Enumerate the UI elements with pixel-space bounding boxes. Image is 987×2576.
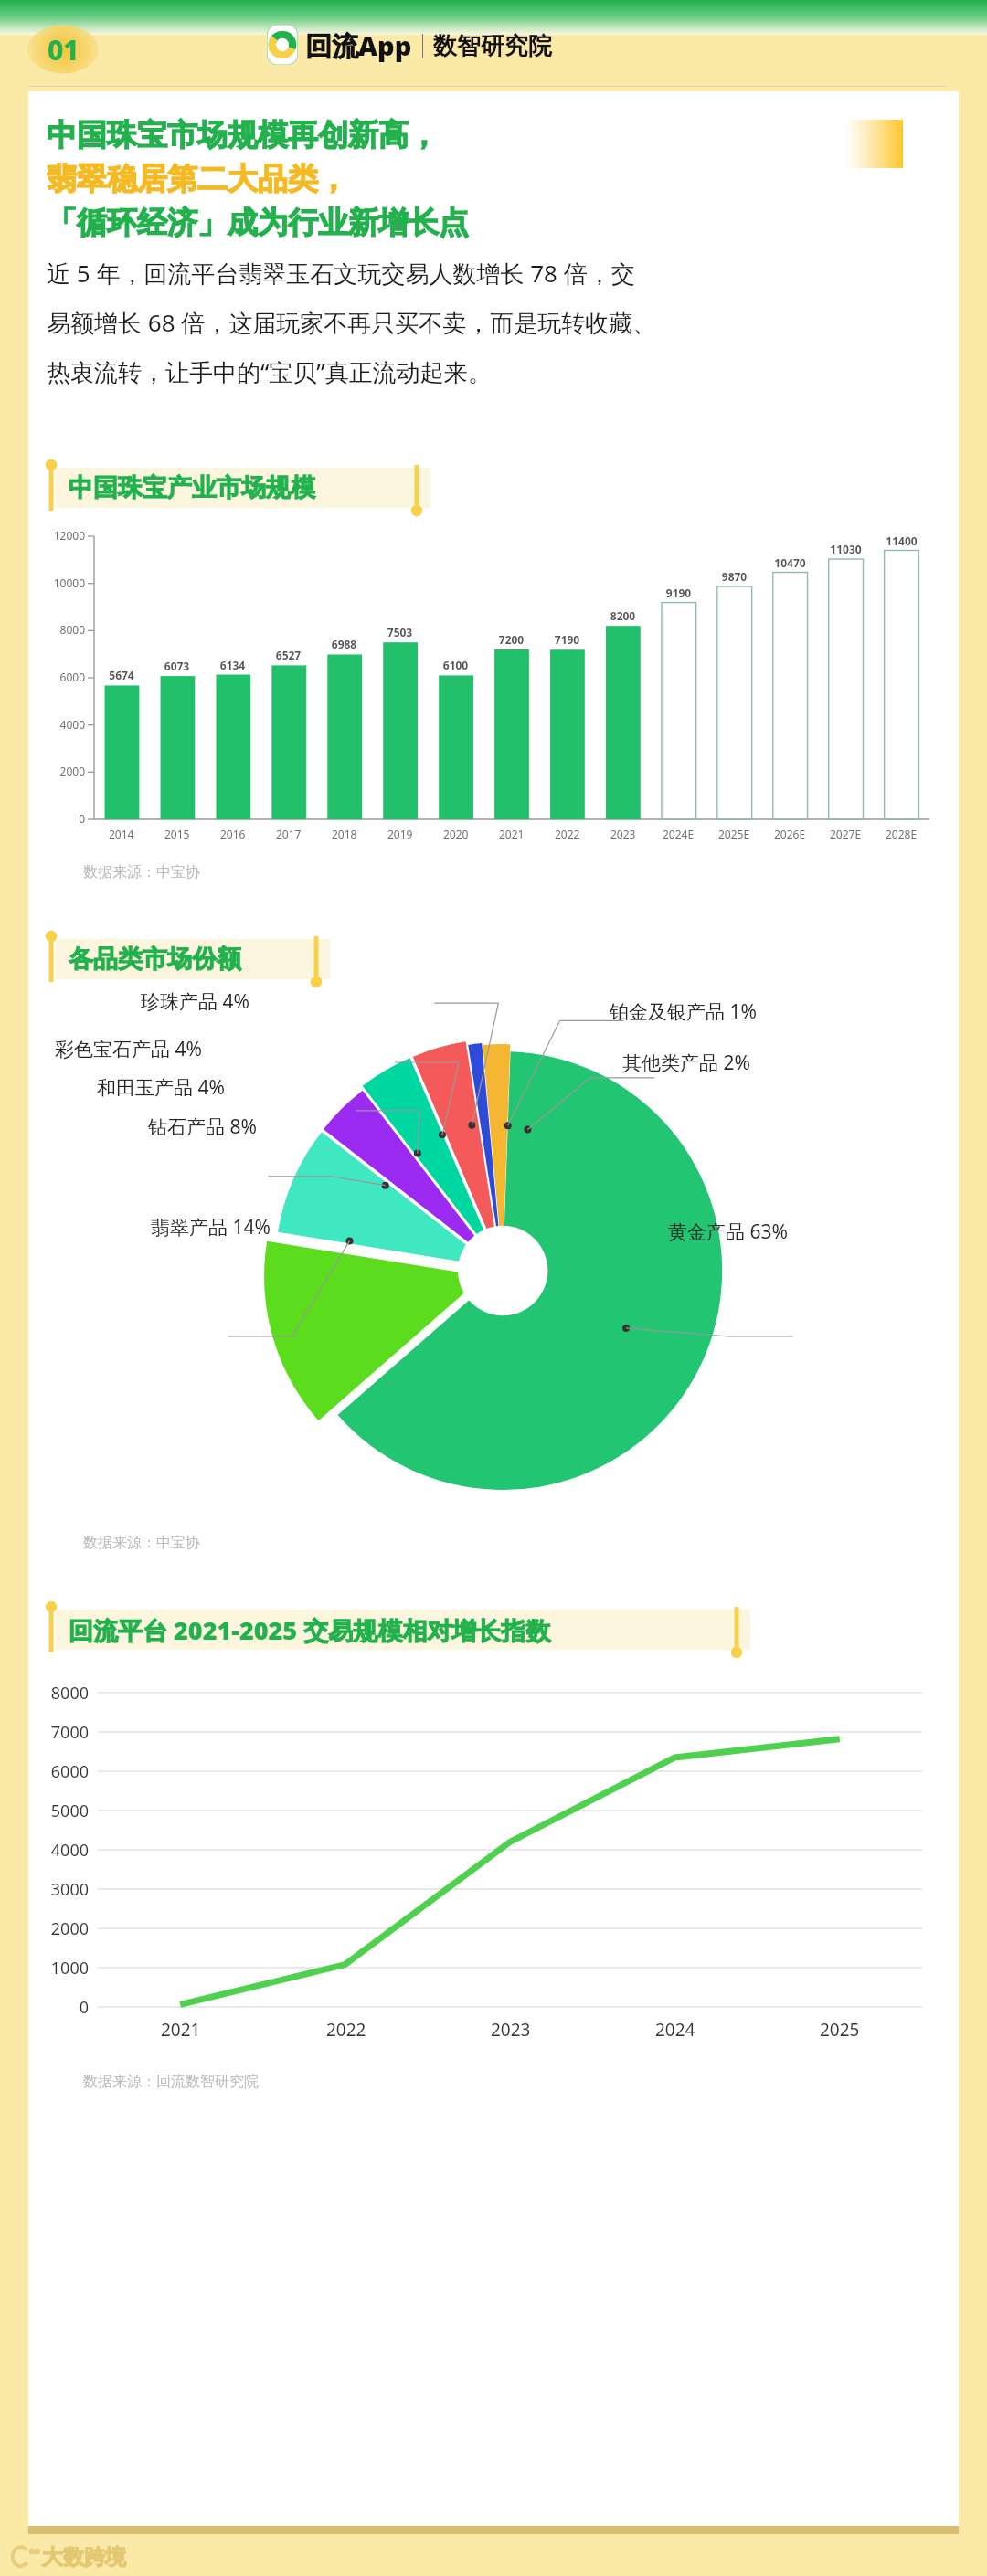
staticText: 各品类市场份额 [69, 944, 241, 975]
button[interactable]: 各品类市场份额 [47, 933, 321, 986]
button[interactable]: 回流平台 2021-2025 交易规模相对增长指数 [47, 1603, 741, 1656]
staticText: 6988 [316, 637, 372, 651]
staticText: 6100 [428, 658, 483, 672]
staticText: 铂金及银产品 1% [610, 998, 757, 1025]
staticText: 中国珠宝产业市场规模 [69, 472, 315, 503]
staticText: 5000 [41, 1800, 89, 1822]
staticText: 01 [48, 31, 80, 69]
staticText: 1000 [41, 1957, 89, 1980]
staticText: 11400 [874, 533, 929, 548]
staticText: 8200 [595, 608, 651, 623]
staticText: 2021 [161, 2018, 201, 2042]
staticText: 2017 [276, 827, 302, 841]
staticText: 易额增长 68 倍，这届玩家不再只买不卖，而是玩转收藏、 [47, 306, 657, 339]
staticText: 翡翠产品 14% [28, 1214, 271, 1240]
staticText: 2021 [499, 827, 525, 841]
staticText: 2019 [387, 827, 413, 841]
staticText: 2023 [610, 827, 636, 841]
staticText: 回流平台 2021-2025 交易规模相对增长指数 [69, 1613, 551, 1647]
staticText: 数据来源：回流数智研究院 [83, 2073, 259, 2091]
staticText: 8000 [41, 622, 85, 637]
staticText: 中国珠宝市场规模再创新高， [47, 116, 439, 154]
staticText: 2020 [443, 827, 469, 841]
button[interactable]: 01 [27, 29, 99, 69]
staticText: 黄金产品 63% [668, 1219, 788, 1245]
staticText: 9870 [706, 569, 762, 584]
staticText: 7200 [483, 632, 539, 647]
staticText: 钻石产品 8% [28, 1114, 257, 1140]
staticText: 数智研究院 [433, 31, 552, 61]
staticText: 2023 [491, 2018, 531, 2042]
staticText: 珍珠产品 4% [28, 988, 249, 1015]
staticText: 12000 [41, 528, 85, 543]
staticText: 7503 [372, 625, 428, 639]
button[interactable]: 中国珠宝产业市场规模 [47, 461, 421, 514]
staticText: 回流App [305, 27, 412, 64]
button[interactable]: 回流App logo [267, 25, 298, 65]
staticText: 数据来源：中宝协 [83, 1534, 200, 1552]
staticText: 2000 [41, 1917, 89, 1940]
staticText: 「循环经济」成为行业新增长点 [47, 204, 469, 242]
staticText: 7190 [539, 632, 595, 647]
staticText: 9190 [651, 586, 706, 600]
staticText: 2022 [326, 2018, 366, 2042]
staticText: 2018 [332, 827, 357, 841]
staticText: 4000 [41, 717, 85, 732]
staticText: 2016 [220, 827, 246, 841]
staticText: 翡翠稳居第二大品类， [47, 160, 348, 198]
staticText: 6000 [41, 1760, 89, 1783]
staticText: 2028E [886, 827, 918, 841]
staticText: 2014 [109, 827, 134, 841]
staticText: 6073 [149, 659, 205, 673]
staticText: 其他类产品 2% [622, 1050, 750, 1076]
staticText: 大数跨境 [42, 2544, 126, 2571]
staticText: 6134 [205, 658, 260, 672]
staticText: 2000 [41, 764, 85, 778]
staticText: 2026E [774, 827, 806, 841]
staticText: 和田玉产品 4% [28, 1074, 225, 1101]
staticText: 热衷流转，让手中的“宝贝”真正流动起来。 [47, 355, 492, 388]
staticText: 8000 [41, 1682, 89, 1705]
staticText: 0 [41, 1996, 89, 2019]
staticText: 2022 [555, 827, 580, 841]
staticText: 近 5 年，回流平台翡翠玉石文玩交易人数增长 78 倍，交 [47, 257, 635, 290]
staticText: 6000 [41, 670, 85, 684]
staticText: 2024E [663, 827, 695, 841]
staticText: 2024 [655, 2018, 695, 2042]
staticText: 2025 [820, 2018, 860, 2042]
staticText: 彩色宝石产品 4% [28, 1036, 202, 1062]
staticText: 7000 [41, 1721, 89, 1744]
staticText: 6527 [260, 648, 316, 662]
staticText: 10470 [762, 555, 818, 570]
staticText: 数据来源：中宝协 [83, 863, 200, 882]
staticText: 0 [41, 811, 85, 826]
staticText: 10000 [41, 575, 85, 590]
staticText: 2015 [164, 827, 190, 841]
staticText: 11030 [818, 542, 874, 556]
staticText: 2025E [718, 827, 750, 841]
staticText: 3000 [41, 1878, 89, 1901]
staticText: 4000 [41, 1839, 89, 1862]
staticText: 5674 [94, 668, 149, 682]
staticText: 2027E [830, 827, 862, 841]
